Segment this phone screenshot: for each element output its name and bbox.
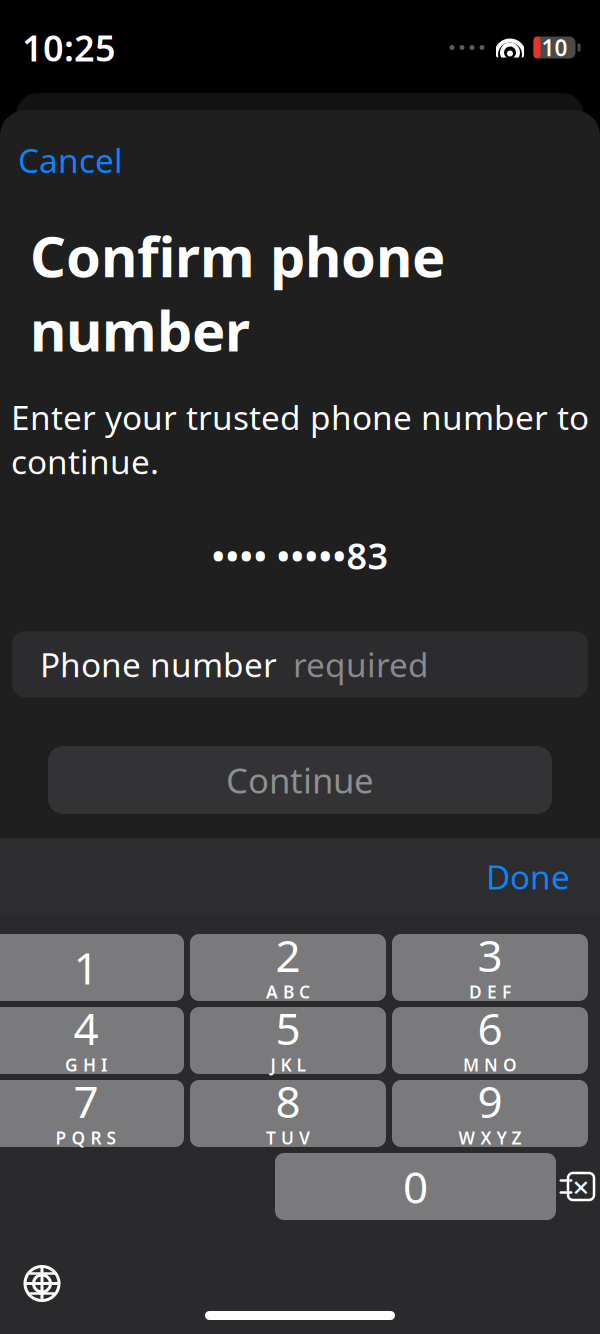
button[interactable]: 0 <box>275 1153 556 1220</box>
staticText: D E F <box>469 980 511 1003</box>
button[interactable]: 3 <box>392 934 588 1001</box>
staticText: •••• •••••83 <box>211 531 388 579</box>
staticText: A B C <box>266 980 310 1003</box>
staticText: 7 <box>73 1072 98 1130</box>
staticText: × <box>572 1167 589 1206</box>
button[interactable]: Phone number <box>12 631 588 697</box>
button[interactable]: 8 <box>190 1080 386 1147</box>
staticText: Enter your trusted phone number to conti… <box>11 395 589 483</box>
staticText: W X Y Z <box>458 1126 521 1149</box>
staticText: J K L <box>270 1053 305 1076</box>
staticText: 5 <box>275 999 300 1057</box>
staticText: 2 <box>275 926 300 984</box>
staticText: Cancel <box>18 138 123 182</box>
staticText: Confirm phone number <box>30 218 445 367</box>
staticText: 6 <box>477 999 502 1057</box>
button[interactable]: 9 <box>392 1080 588 1147</box>
staticText: 10:25 <box>22 24 116 71</box>
staticText: Continue <box>226 757 374 803</box>
staticText: 4 <box>73 999 98 1057</box>
staticText: 3 <box>477 926 502 984</box>
button[interactable]: 1 <box>0 934 184 1001</box>
staticText: G H I <box>65 1053 107 1076</box>
button[interactable]: 5 <box>190 1007 386 1074</box>
staticText: required <box>293 642 429 686</box>
staticText: P Q R S <box>55 1126 116 1149</box>
button[interactable]: Continue <box>48 746 552 814</box>
button[interactable]: Delete <box>562 1153 588 1220</box>
button[interactable]: 2 <box>190 934 386 1001</box>
staticText: 9 <box>477 1072 502 1130</box>
staticText: M N O <box>463 1053 517 1076</box>
staticText: 8 <box>275 1072 300 1130</box>
button[interactable]: Cancel <box>14 130 127 190</box>
staticText: Done <box>486 854 570 899</box>
button[interactable]: Done <box>472 846 584 907</box>
button[interactable]: Next keyboard <box>20 1261 64 1305</box>
button[interactable]: 4 <box>0 1007 184 1074</box>
staticText: 0 <box>403 1157 428 1216</box>
button[interactable]: 6 <box>392 1007 588 1074</box>
staticText: Phone number <box>40 642 277 686</box>
staticText: T U V <box>266 1126 310 1149</box>
staticText: 10 <box>541 32 567 62</box>
button[interactable]: 7 <box>0 1080 184 1147</box>
staticText: 1 <box>73 938 98 997</box>
